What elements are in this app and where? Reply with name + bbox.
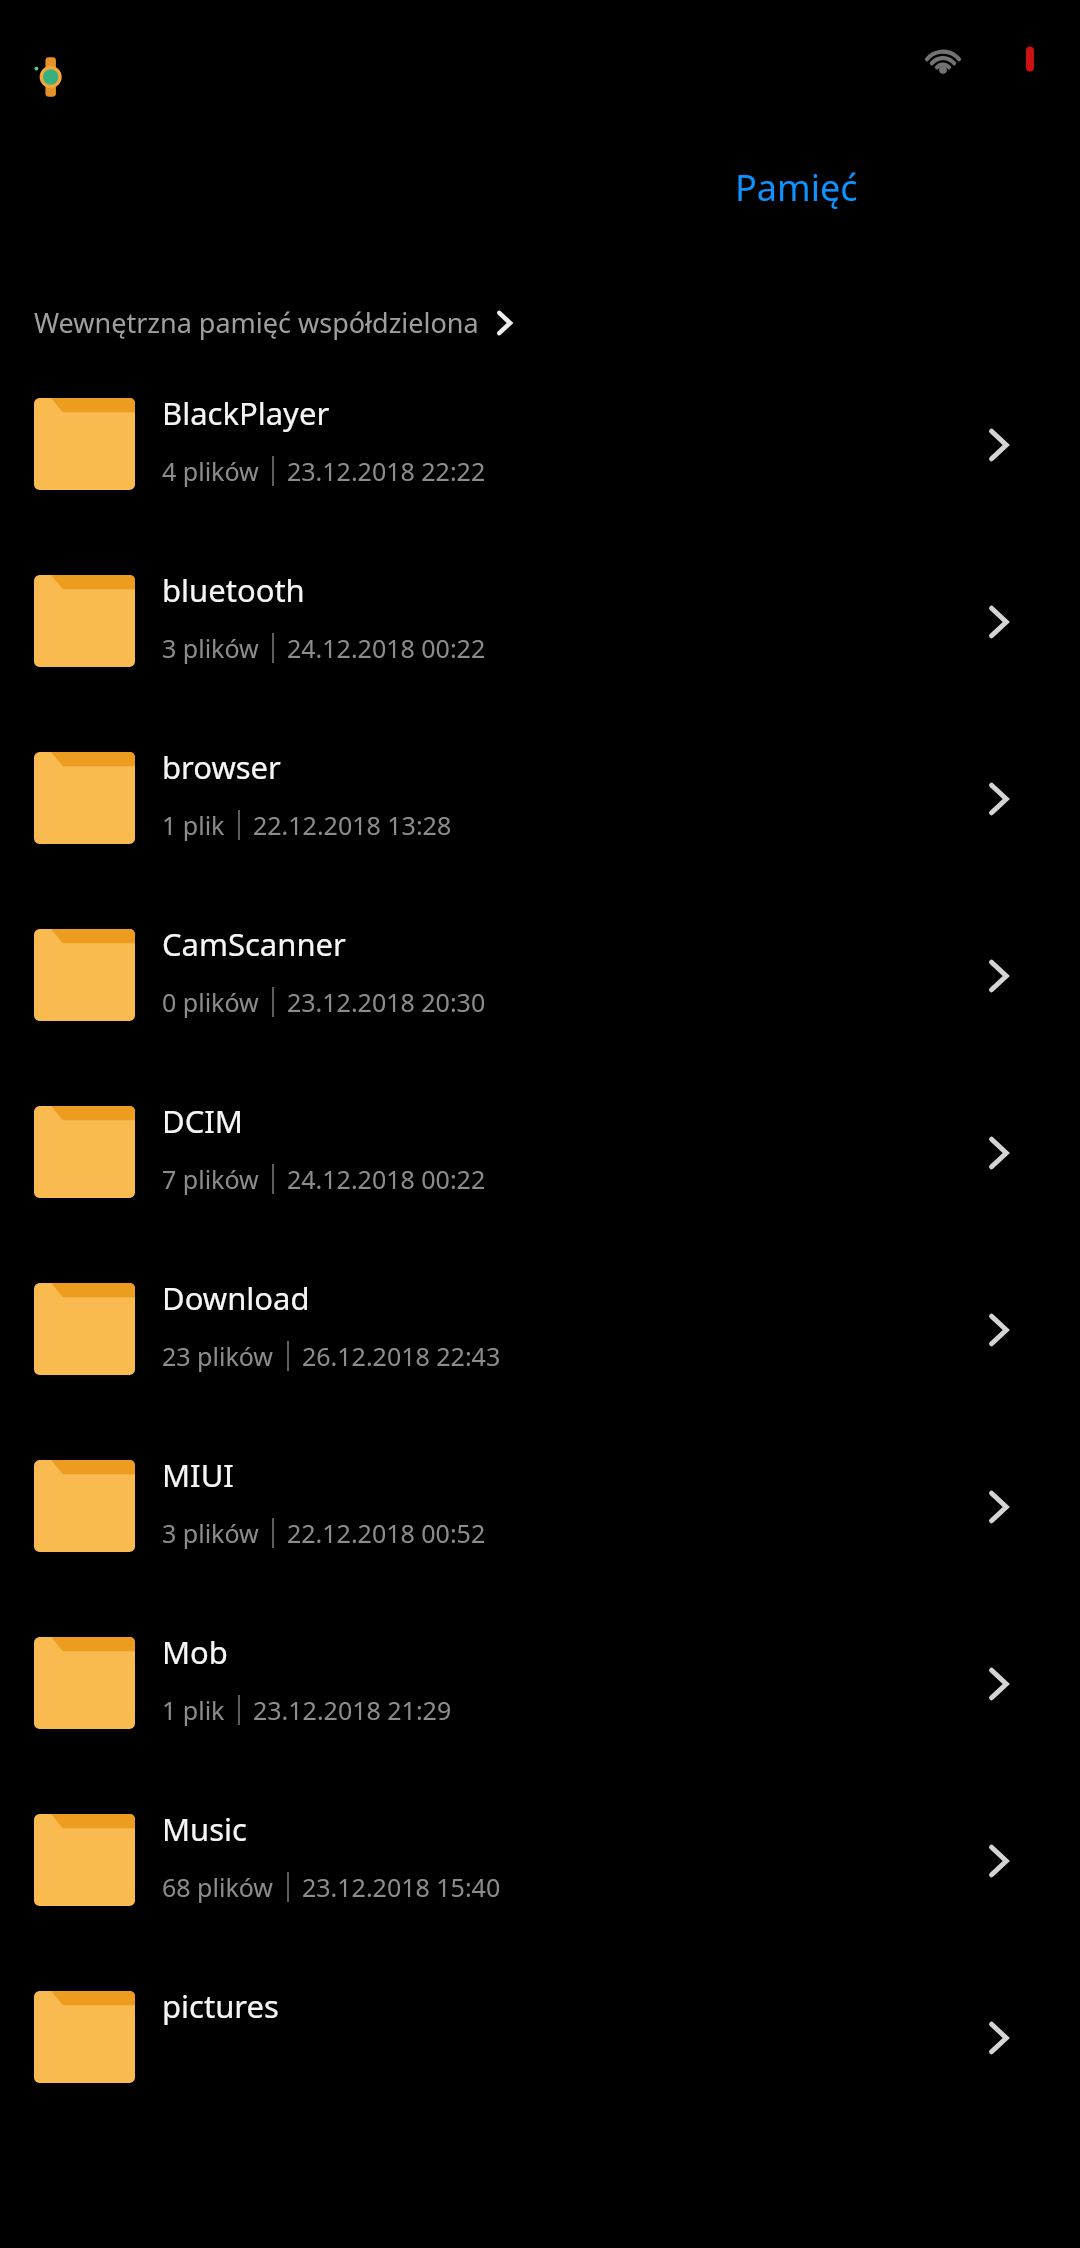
other: Open Mob — [975, 1661, 1021, 1707]
button[interactable]: Wewnętrzna pamięć współdzielona — [34, 298, 521, 347]
button[interactable]: MIUI — [0, 1442, 1080, 1619]
button[interactable]: Music — [0, 1796, 1080, 1973]
staticText: 23.12.2018 15:40 — [302, 1870, 501, 1904]
staticText: MIUI — [162, 1454, 234, 1496]
staticText: 4 plików — [162, 454, 259, 488]
staticText: 3 plików — [162, 631, 259, 665]
staticText: 24.12.2018 00:22 — [287, 1162, 486, 1196]
staticText: 24.12.2018 00:22 — [287, 631, 486, 665]
other: Wi-Fi — [920, 40, 966, 74]
staticText: BlackPlayer — [162, 392, 330, 434]
other: Open BlackPlayer — [975, 422, 1021, 468]
staticText: Wewnętrzna pamięć współdzielona — [34, 304, 479, 341]
staticText: pictures — [162, 1985, 279, 2027]
staticText: Music — [162, 1808, 248, 1850]
staticText: 22.12.2018 13:28 — [253, 808, 452, 842]
other: Open Music — [975, 1838, 1021, 1884]
other: Open bluetooth — [975, 599, 1021, 645]
button[interactable]: BlackPlayer — [0, 380, 1080, 557]
other: Notification — [33, 56, 67, 98]
staticText: Pamięć — [735, 163, 858, 212]
button[interactable]: Download — [0, 1265, 1080, 1442]
staticText: 23.12.2018 20:30 — [287, 985, 486, 1019]
other: Open Download — [975, 1307, 1021, 1353]
staticText: Download — [162, 1277, 310, 1319]
other: Open DCIM — [975, 1130, 1021, 1176]
staticText: browser — [162, 746, 281, 788]
staticText: 26.12.2018 22:43 — [302, 1339, 501, 1373]
staticText: DCIM — [162, 1100, 243, 1142]
staticText: 22.12.2018 00:52 — [287, 1516, 486, 1550]
other: Open pictures — [975, 2015, 1021, 2061]
staticText: 68 plików — [162, 1870, 274, 1904]
staticText: 3 plików — [162, 1516, 259, 1550]
other: Open CamScanner — [975, 953, 1021, 999]
other: Open browser — [975, 776, 1021, 822]
button[interactable]: pictures — [0, 1973, 1080, 2150]
staticText: 23 plików — [162, 1339, 274, 1373]
staticText: CamScanner — [162, 923, 346, 965]
button[interactable]: browser — [0, 734, 1080, 911]
staticText: Mob — [162, 1631, 228, 1673]
button[interactable]: bluetooth — [0, 557, 1080, 734]
button[interactable]: DCIM — [0, 1088, 1080, 1265]
staticText: 7 plików — [162, 1162, 259, 1196]
button[interactable]: CamScanner — [0, 911, 1080, 1088]
staticText: 23.12.2018 21:29 — [253, 1693, 452, 1727]
staticText: 23.12.2018 22:22 — [287, 454, 486, 488]
staticText: 1 plik — [162, 808, 225, 842]
staticText: 0 plików — [162, 985, 259, 1019]
staticText: 1 plik — [162, 1693, 225, 1727]
other: Battery — [1021, 42, 1039, 74]
button[interactable]: Mob — [0, 1619, 1080, 1796]
other: Open MIUI — [975, 1484, 1021, 1530]
staticText: bluetooth — [162, 569, 305, 611]
